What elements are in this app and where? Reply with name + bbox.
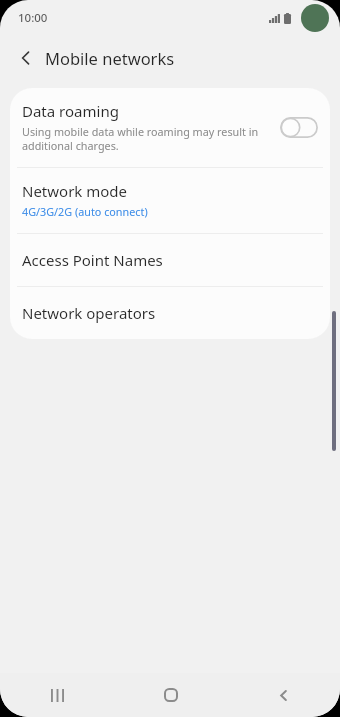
button[interactable]: Network mode xyxy=(10,168,330,233)
button[interactable]: Recent apps xyxy=(0,673,114,717)
staticText: Network mode xyxy=(22,181,128,201)
button[interactable]: Home xyxy=(114,673,227,717)
staticText: Mobile networks xyxy=(45,47,175,69)
button[interactable]: Data roaming xyxy=(10,88,330,167)
button[interactable]: Back xyxy=(227,673,340,717)
staticText: Access Point Names xyxy=(22,250,163,270)
staticText: Using mobile data while roaming may resu… xyxy=(22,124,272,153)
button[interactable]: Access Point Names xyxy=(10,234,330,286)
staticText: Data roaming xyxy=(22,101,119,121)
button[interactable]: Navigate up xyxy=(9,41,43,75)
staticText: 10:00 xyxy=(18,10,48,26)
button[interactable]: Network operators xyxy=(10,287,330,339)
staticText: Network operators xyxy=(22,303,156,323)
staticText: 4G/3G/2G (auto connect) xyxy=(22,204,148,219)
button[interactable]: Data roaming, off xyxy=(280,117,318,138)
